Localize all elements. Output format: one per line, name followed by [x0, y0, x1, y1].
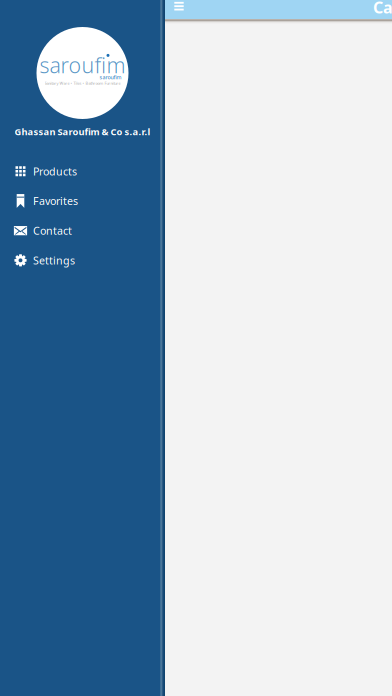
button[interactable]: Settings	[1, 245, 163, 275]
button[interactable]: Contact	[1, 216, 163, 245]
staticText: Sanitary Ware • Tiles • Bathroom Furnitu…	[44, 81, 120, 86]
button[interactable]: Favorites	[1, 186, 163, 216]
staticText: Catalog	[373, 0, 392, 18]
staticText: saroufim	[39, 51, 125, 79]
staticText: Contact	[33, 224, 72, 238]
button[interactable]: Menu	[169, 2, 189, 12]
button[interactable]: Products	[1, 156, 163, 186]
staticText: Settings	[33, 253, 75, 267]
staticText: Products	[33, 164, 77, 178]
staticText: saroufim	[99, 74, 121, 81]
staticText: Ghassan Saroufim & Co s.a.r.l	[14, 125, 150, 138]
staticText: Favorites	[33, 194, 78, 208]
